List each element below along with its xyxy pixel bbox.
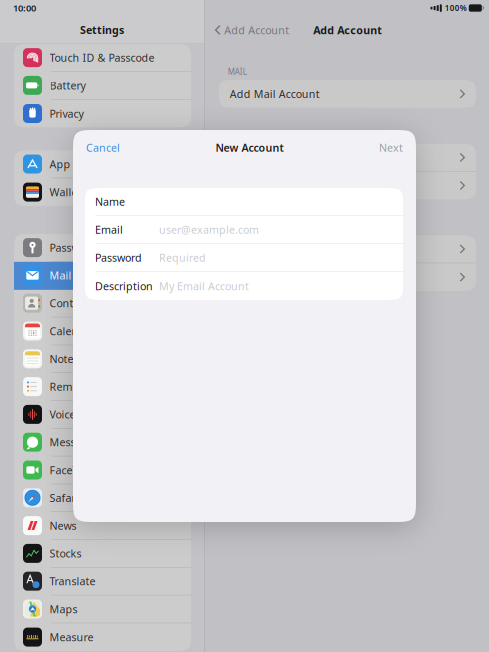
button[interactable]: FaceTime [14,456,191,484]
staticText: News [49,518,76,533]
button[interactable]: Voice Memos [14,401,191,429]
staticText: Next [379,140,403,155]
staticText: Voice Memos [49,407,115,421]
button[interactable]: Cancel [73,130,130,165]
staticText: Measure [49,630,93,644]
button[interactable]: Privacy [14,100,191,127]
button[interactable] [219,172,476,199]
staticText: My Email Account [159,279,249,293]
staticText: Description [95,279,153,293]
button[interactable]: Stocks [14,540,191,568]
staticText: Password [95,251,142,265]
staticText: Touch ID & Passcode [49,50,154,65]
staticText: Passwords [49,240,101,255]
button[interactable]: Mail [14,262,191,290]
button[interactable]: Safari [14,484,191,512]
button[interactable]: Touch ID & Passcode [14,44,191,72]
staticText: Add Account [224,23,289,37]
staticText: Messages [49,435,99,449]
button[interactable] [219,263,476,291]
staticText: Battery [49,78,85,92]
staticText: New Account [215,140,283,155]
staticText: Name [95,195,125,209]
staticText: user@example.com [159,223,259,237]
staticText: FaceTime [49,463,97,477]
button[interactable]: Translate [14,568,191,595]
button[interactable]: Add Mail Account [219,80,476,108]
staticText: Calendar [49,324,95,338]
button[interactable]: Contacts [14,290,191,317]
staticText: Mail [49,268,71,282]
staticText: 10:00 [13,2,36,14]
staticText: Translate [49,574,95,588]
button[interactable]: Passwords [14,234,191,262]
button[interactable]: Battery [14,72,191,100]
button[interactable]: Wallet [14,178,191,206]
staticText: Required [159,251,206,265]
button[interactable] [219,235,476,263]
staticText: Privacy [49,106,83,121]
button[interactable] [219,144,476,172]
staticText: Email [95,223,123,237]
button[interactable]: Reminders [14,373,191,401]
button[interactable]: Next [369,130,416,165]
staticText: Settings [80,23,124,37]
staticText: Notes [49,352,78,366]
staticText: App Store [49,157,99,171]
staticText: MAIL [228,66,247,77]
button[interactable]: Calendar [14,317,191,345]
staticText: Reminders [49,379,104,394]
button[interactable]: App Store [14,150,191,178]
staticText: 100% [445,3,467,13]
button[interactable]: Messages [14,429,191,456]
staticText: Cancel [86,140,120,155]
staticText: Add Mail Account [230,87,320,101]
staticText: Add Account [313,23,382,37]
button[interactable]: Maps [14,595,191,623]
button[interactable]: News [14,512,191,540]
staticText: Safari [49,491,78,505]
staticText: Wallet [49,185,81,199]
button[interactable]: Measure [14,623,191,651]
staticText: Stocks [49,546,81,560]
staticText: Maps [49,602,77,616]
staticText: Contacts [49,296,93,310]
button[interactable]: Add Account [205,17,295,43]
button[interactable]: Notes [14,345,191,373]
